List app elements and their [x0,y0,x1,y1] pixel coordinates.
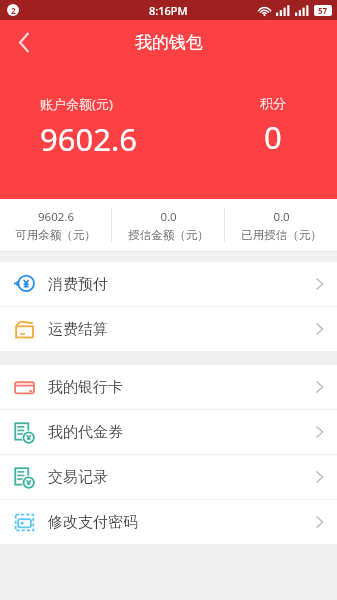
staticText: 9602.6 [40,118,137,160]
staticText: 消费预付 [48,275,108,294]
button[interactable]: 我的代金券 [0,410,337,454]
staticText: 账户余额(元) [40,95,113,113]
staticText: 我的钱包 [135,32,203,53]
button[interactable]: 交易记录 [0,455,337,499]
staticText: 57 [318,5,328,16]
staticText: 已用授信（元） [241,228,322,242]
staticText: 0 [264,116,282,158]
staticText: 积分 [260,95,286,111]
staticText: 我的银行卡 [48,378,123,397]
button[interactable]: 修改支付密码 [0,500,337,544]
button[interactable]: 消费预付 [0,262,337,306]
button[interactable]: 我的银行卡 [0,365,337,409]
button[interactable]: 运费结算 [0,307,337,351]
staticText: 0.0 [160,209,177,225]
button[interactable]: Back [0,20,48,65]
staticText: 2 [11,5,16,16]
staticText: 运费结算 [48,320,108,339]
staticText: 9602.6 [38,209,74,225]
staticText: 授信金额（元） [128,228,209,242]
staticText: 我的代金券 [48,423,123,442]
staticText: 交易记录 [48,468,108,487]
staticText: 8:16PM [149,3,188,18]
staticText: 修改支付密码 [48,513,138,532]
staticText: 可用余额（元） [15,228,96,242]
staticText: 0.0 [273,209,290,225]
